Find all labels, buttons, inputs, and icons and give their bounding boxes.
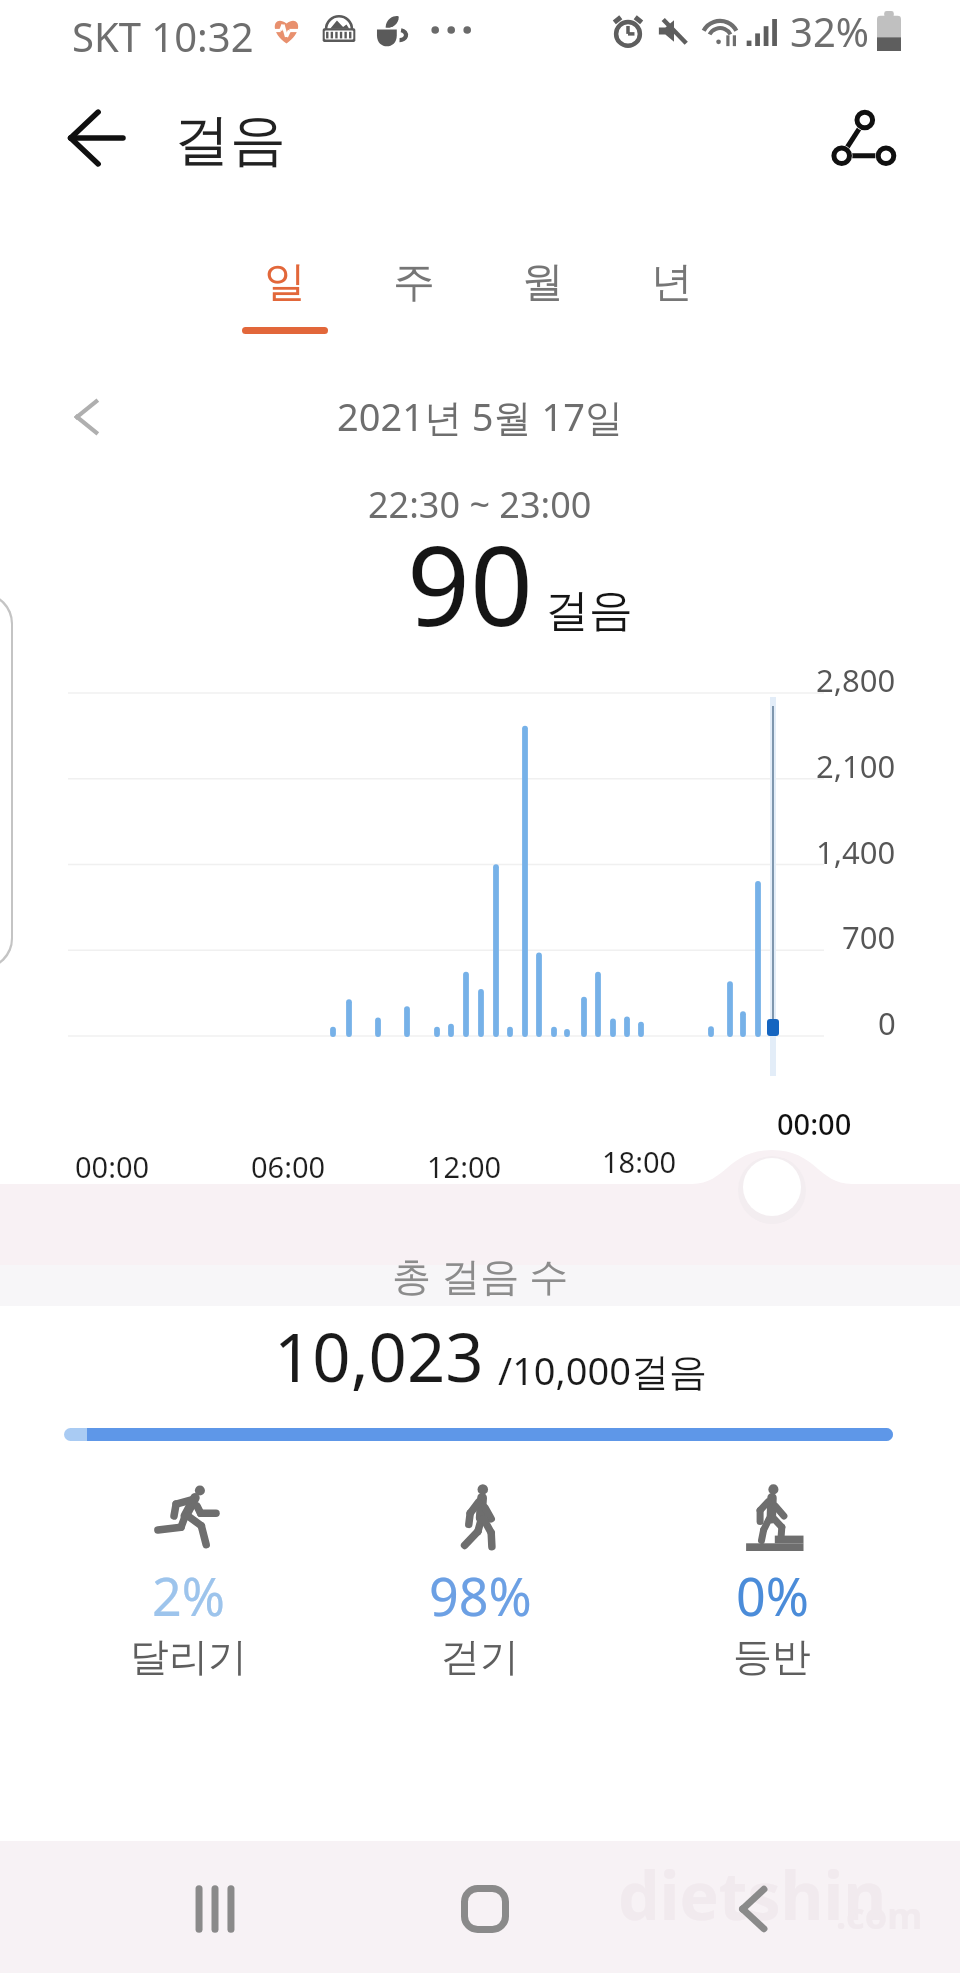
staticText: 700 (842, 916, 896, 958)
staticText: 월 (522, 256, 564, 309)
staticText: 2,800 (816, 659, 896, 701)
staticText: 2% (152, 1560, 225, 1631)
staticText: 90 (407, 508, 533, 658)
button[interactable]: 0% (672, 1481, 872, 1681)
staticText: 18:00 (602, 1142, 677, 1181)
button[interactable]: 년 (608, 233, 736, 337)
button[interactable]: Expand details (716, 1131, 828, 1243)
button[interactable]: 98% (380, 1481, 580, 1681)
staticText: 2,100 (816, 745, 896, 787)
staticText: dietshin (618, 1849, 887, 1939)
staticText: 주 (393, 256, 435, 309)
button[interactable]: 주 (350, 233, 478, 337)
staticText: 걸음 (174, 105, 286, 176)
staticText: 98% (429, 1560, 532, 1631)
staticText: 0 (878, 1002, 896, 1044)
staticText: .com (836, 1891, 923, 1940)
button[interactable]: Share (820, 96, 908, 184)
staticText: 총 걸음 수 (392, 1248, 569, 1301)
button[interactable]: Back (705, 1861, 801, 1957)
staticText: 달리기 (130, 1632, 247, 1681)
button[interactable]: Recents (167, 1861, 263, 1957)
staticText: 일 (264, 256, 306, 309)
staticText: 1,400 (816, 831, 896, 873)
button[interactable]: Home (437, 1861, 533, 1957)
staticText: 년 (651, 256, 693, 309)
staticText: 0% (736, 1560, 809, 1631)
staticText: /10,000걸음 (498, 1344, 708, 1396)
staticText: 06:00 (251, 1147, 326, 1186)
staticText: 00:00 (777, 1104, 852, 1143)
button[interactable]: Previous day (52, 382, 122, 452)
button[interactable]: 일 (221, 233, 349, 337)
staticText: 00:00 (75, 1147, 150, 1186)
staticText: 22:30 ~ 23:00 (368, 480, 592, 529)
staticText: 등반 (733, 1632, 811, 1681)
button[interactable]: 2% (88, 1481, 288, 1681)
staticText: 2021년 5월 17일 (337, 390, 623, 442)
staticText: SKT 10:32 (72, 9, 254, 63)
staticText: 12:00 (427, 1147, 502, 1186)
staticText: 걷기 (441, 1632, 519, 1681)
button[interactable]: Back (52, 94, 140, 182)
button[interactable]: 월 (479, 233, 607, 337)
staticText: 10,023 (274, 1310, 484, 1401)
staticText: 32% (790, 4, 869, 58)
staticText: 걸음 (545, 583, 633, 638)
